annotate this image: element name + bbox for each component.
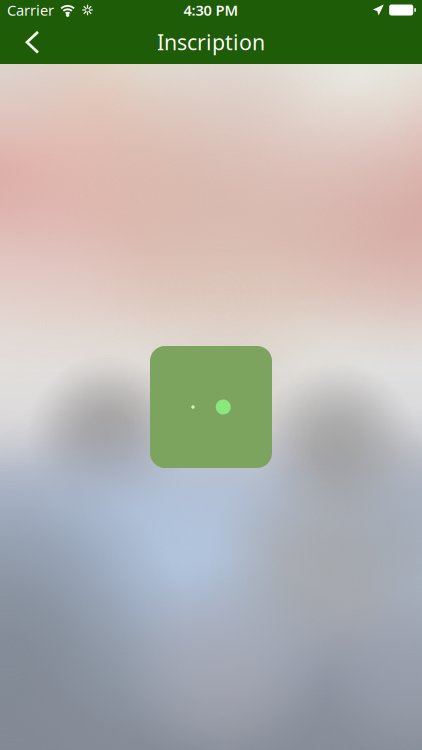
staticText: Inscription — [157, 28, 265, 56]
staticText: Carrier — [7, 0, 54, 20]
button[interactable]: Back — [10, 20, 54, 64]
staticText: 4:30 PM — [183, 0, 238, 20]
